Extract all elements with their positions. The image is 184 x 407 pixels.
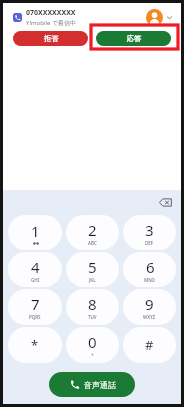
button[interactable]: * <box>8 327 62 363</box>
button[interactable]: 拒否 <box>13 31 88 46</box>
button[interactable]: 3 <box>123 215 176 250</box>
button[interactable]: 7 <box>8 289 62 325</box>
staticText: 音声通話 <box>84 380 116 390</box>
staticText: 0 <box>88 332 97 352</box>
staticText: GHI <box>31 277 40 283</box>
staticText: DEF <box>145 240 154 246</box>
staticText: * <box>31 336 39 354</box>
button[interactable]: 070XXXXXXXX <box>7 5 177 55</box>
staticText: 4 <box>31 257 40 277</box>
staticText: 9 <box>145 294 154 314</box>
button[interactable]: 5 <box>66 252 119 287</box>
staticText: 2 <box>88 220 97 240</box>
button[interactable]: 音声通話 <box>49 372 135 397</box>
staticText: 拒否 <box>44 34 58 43</box>
staticText: 8 <box>88 294 97 314</box>
staticText: 7 <box>31 294 40 314</box>
staticText: # <box>145 336 154 354</box>
button[interactable]: 6 <box>123 252 176 287</box>
staticText: 6 <box>146 257 155 277</box>
button[interactable]: # <box>123 327 176 363</box>
button[interactable]: 8 <box>66 289 119 325</box>
button[interactable]: 1 <box>8 215 62 250</box>
button[interactable]: Backspace <box>157 194 173 210</box>
staticText: + <box>91 352 94 358</box>
button[interactable]: 9 <box>123 289 176 325</box>
staticText: 070XXXXXXXX <box>26 8 76 18</box>
staticText: 1 <box>31 221 40 241</box>
staticText: ABC <box>88 240 97 246</box>
staticText: 応答 <box>127 34 141 43</box>
staticText: 5 <box>88 257 97 277</box>
staticText: TUV <box>88 314 97 320</box>
staticText: WXYZ <box>143 314 156 320</box>
staticText: MNO <box>144 277 156 283</box>
button[interactable]: 0 <box>66 327 119 363</box>
button[interactable]: 4 <box>8 252 62 287</box>
button[interactable]: 2 <box>66 215 119 250</box>
staticText: 3 <box>145 220 154 240</box>
staticText: JKL <box>89 277 96 283</box>
staticText: Y!mobile で着信中 <box>26 19 77 27</box>
button[interactable]: 応答 <box>96 31 171 46</box>
staticText: PQRS <box>29 314 41 320</box>
